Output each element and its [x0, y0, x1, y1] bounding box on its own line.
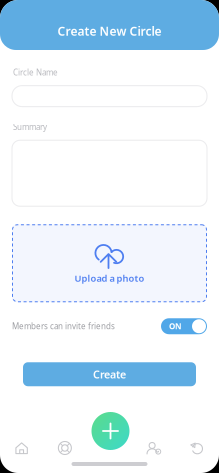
staticText: ON	[169, 321, 182, 331]
button[interactable]: Explore	[43, 441, 86, 455]
button[interactable]: Profile settings	[132, 441, 176, 454]
button[interactable]: Members can invite friends	[161, 318, 207, 334]
button[interactable]: Create	[12, 362, 207, 386]
staticText: Upload a photo	[74, 272, 144, 284]
button[interactable]: Upload a photo	[12, 224, 207, 302]
staticText: Circle Name	[13, 67, 58, 78]
staticText: Create	[93, 367, 126, 381]
button[interactable]: Activity	[176, 441, 219, 454]
staticText: Create New Circle	[57, 23, 161, 39]
button[interactable]: Home	[0, 442, 43, 454]
staticText: Members can invite friends	[12, 321, 115, 331]
staticText: Summary	[13, 122, 47, 132]
button[interactable]: Create	[88, 409, 132, 453]
